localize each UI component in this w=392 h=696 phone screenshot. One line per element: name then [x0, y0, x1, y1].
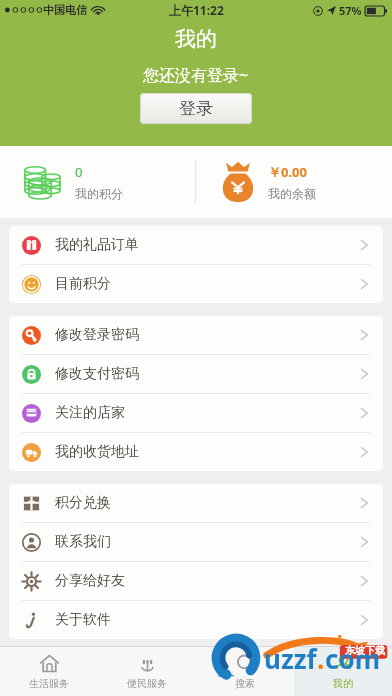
staticText: 积分兑换	[55, 494, 111, 512]
button[interactable]: 积分兑换	[9, 484, 383, 522]
button[interactable]: 分享给好友	[9, 562, 383, 600]
staticText: 我的积分	[75, 186, 123, 201]
staticText: 0	[75, 163, 83, 181]
button[interactable]: 0	[0, 146, 195, 218]
button[interactable]: 修改支付密码	[9, 355, 383, 393]
button[interactable]: 修改登录密码	[9, 316, 383, 354]
staticText: 便民服务	[127, 677, 167, 690]
staticText: 目前积分	[55, 275, 111, 293]
staticText: .	[317, 641, 325, 676]
staticText: 修改登录密码	[55, 326, 139, 344]
button[interactable]: 搜索	[196, 647, 294, 696]
staticText: 我的收货地址	[55, 443, 139, 461]
staticText: 联系我们	[55, 533, 111, 551]
staticText: 修改支付密码	[55, 365, 139, 383]
staticText: 搜索	[235, 677, 255, 690]
button[interactable]: 登录	[140, 93, 252, 124]
button[interactable]: 我的收货地址	[9, 433, 383, 471]
staticText: 东坡下载	[345, 644, 385, 657]
staticText: com	[325, 641, 381, 676]
staticText: 我的余额	[268, 186, 316, 201]
staticText: ￥0.00	[268, 163, 307, 181]
button[interactable]: 便民服务	[98, 647, 196, 696]
staticText: 我的	[333, 677, 353, 690]
staticText: 中国电信	[43, 3, 87, 17]
button[interactable]: 联系我们	[9, 523, 383, 561]
staticText: 生活服务	[29, 677, 69, 690]
button[interactable]: 我的	[294, 647, 392, 696]
button[interactable]: 生活服务	[0, 647, 98, 696]
staticText: 关于软件	[55, 611, 111, 629]
staticText: 分享给好友	[55, 572, 125, 590]
button[interactable]: 关注的店家	[9, 394, 383, 432]
staticText: 我的礼品订单	[55, 236, 139, 254]
staticText: 57%	[339, 3, 362, 18]
button[interactable]: 我的礼品订单	[9, 226, 383, 264]
staticText: 我的	[175, 26, 217, 52]
staticText: 关注的店家	[55, 404, 125, 422]
button[interactable]: ￥0.00	[196, 146, 392, 218]
button[interactable]: 关于软件	[9, 601, 383, 639]
staticText: 上午11:22	[169, 2, 224, 18]
staticText: 您还没有登录~	[143, 64, 249, 86]
staticText: 登录	[179, 98, 213, 119]
staticText: uzzf	[264, 641, 317, 676]
button[interactable]: 目前积分	[9, 265, 383, 303]
